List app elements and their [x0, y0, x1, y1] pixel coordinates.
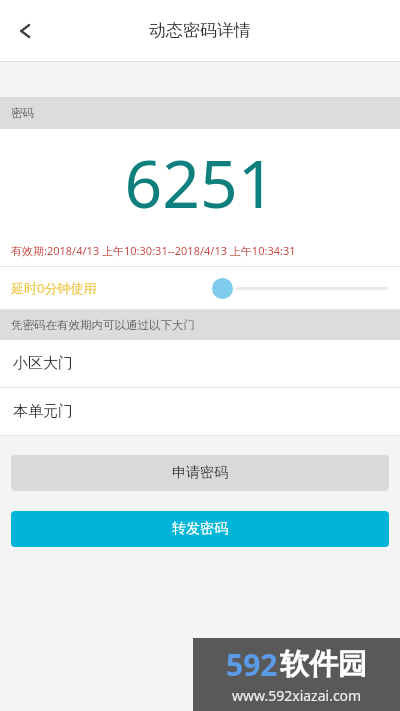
- staticText: www.592xiazai.com: [232, 686, 362, 705]
- staticText: 动态密码详情: [149, 20, 251, 41]
- staticText: 延时0分钟使用: [11, 279, 97, 297]
- staticText: 小区大门: [13, 354, 73, 373]
- staticText: 密码: [11, 106, 34, 120]
- button[interactable]: 转发密码: [11, 511, 389, 547]
- button[interactable]: 申请密码: [11, 455, 389, 491]
- staticText: 有效期:2018/4/13 上午10:30:31--2018/4/13 上午10…: [11, 243, 296, 258]
- staticText: 软件园: [280, 646, 367, 683]
- staticText: 6251: [124, 137, 276, 227]
- button[interactable]: 小区大门: [0, 340, 400, 387]
- staticText: 592: [226, 644, 278, 685]
- button[interactable]: 本单元门: [0, 388, 400, 435]
- button[interactable]: Delay slider: [212, 272, 388, 304]
- staticText: 凭密码在有效期内可以通过以下大门: [11, 318, 195, 332]
- staticText: 转发密码: [172, 520, 228, 538]
- staticText: 本单元门: [13, 402, 73, 421]
- button[interactable]: Back: [0, 5, 52, 57]
- staticText: 申请密码: [172, 464, 228, 482]
